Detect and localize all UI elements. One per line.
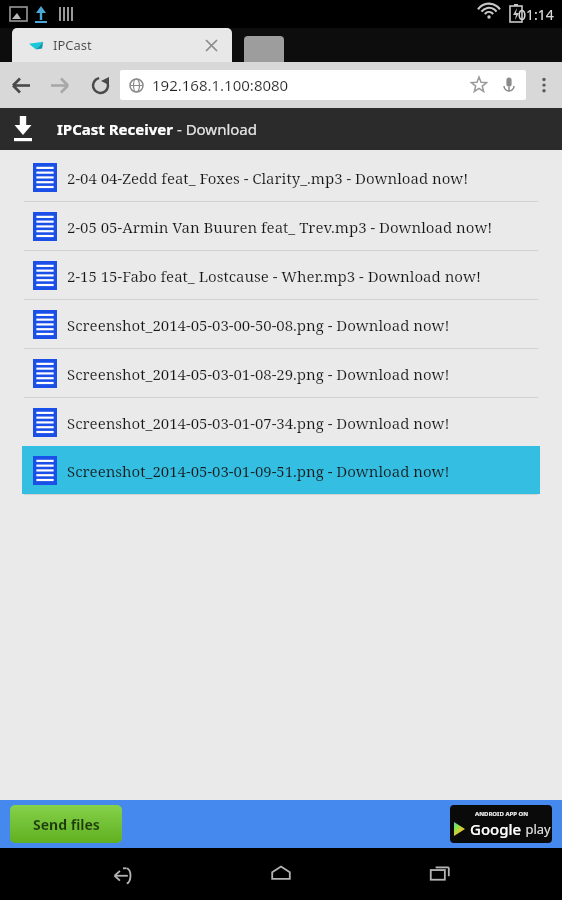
button[interactable]: Screenshot_2014-05-03-01-07-34.png - Dow… — [0, 398, 562, 446]
button[interactable]: Home — [245, 848, 317, 900]
button[interactable]: 2-04 04-Zedd feat_ Foxes - Clarity_.mp3 … — [0, 153, 562, 201]
staticText: Screenshot_2014-05-03-01-09-51.png - Dow… — [67, 461, 450, 481]
button[interactable]: Send files — [10, 805, 122, 843]
button[interactable]: Voice search — [494, 70, 524, 100]
staticText: Google — [470, 819, 522, 839]
button[interactable]: Bookmark — [464, 70, 494, 100]
button[interactable]: Android app on Google Play — [450, 805, 552, 843]
button[interactable]: 2-15 15-Fabo feat_ Lostcause - Wher.mp3 … — [0, 251, 562, 299]
staticText: 2-04 04-Zedd feat_ Foxes - Clarity_.mp3 … — [67, 168, 469, 188]
staticText: IPCast Receiver — [57, 119, 173, 139]
button[interactable]: Screenshot_2014-05-03-01-09-51.png - Dow… — [22, 446, 540, 494]
button[interactable]: 2-05 05-Armin Van Buuren feat_ Trev.mp3 … — [0, 202, 562, 250]
button[interactable]: IPCast — [12, 28, 232, 62]
staticText: play — [522, 820, 551, 838]
staticText: 192.168.1.100:8080 — [152, 75, 289, 95]
button[interactable]: More options — [526, 62, 562, 108]
button[interactable]: Back — [0, 62, 40, 108]
button[interactable]: Close tab — [200, 34, 222, 56]
button[interactable]: Forward — [40, 62, 80, 108]
staticText: - Download — [173, 119, 258, 139]
button[interactable]: Reload — [80, 62, 120, 108]
staticText: ANDROID APP ON — [475, 810, 529, 818]
button[interactable]: Back — [87, 848, 159, 900]
staticText: 01:14 — [518, 5, 554, 24]
staticText: IPCast — [53, 36, 92, 54]
button[interactable] — [244, 36, 284, 62]
button[interactable]: Recent apps — [404, 848, 476, 900]
staticText: Screenshot_2014-05-03-01-07-34.png - Dow… — [67, 413, 450, 433]
staticText: Screenshot_2014-05-03-01-08-29.png - Dow… — [67, 364, 450, 384]
staticText: Screenshot_2014-05-03-00-50-08.png - Dow… — [67, 315, 450, 335]
button[interactable]: 192.168.1.100:8080 — [120, 70, 526, 100]
staticText: Send files — [33, 815, 100, 834]
staticText: 2-05 05-Armin Van Buuren feat_ Trev.mp3 … — [67, 217, 493, 237]
button[interactable]: Screenshot_2014-05-03-00-50-08.png - Dow… — [0, 300, 562, 348]
button[interactable]: Screenshot_2014-05-03-01-08-29.png - Dow… — [0, 349, 562, 397]
staticText: 2-15 15-Fabo feat_ Lostcause - Wher.mp3 … — [67, 266, 481, 286]
